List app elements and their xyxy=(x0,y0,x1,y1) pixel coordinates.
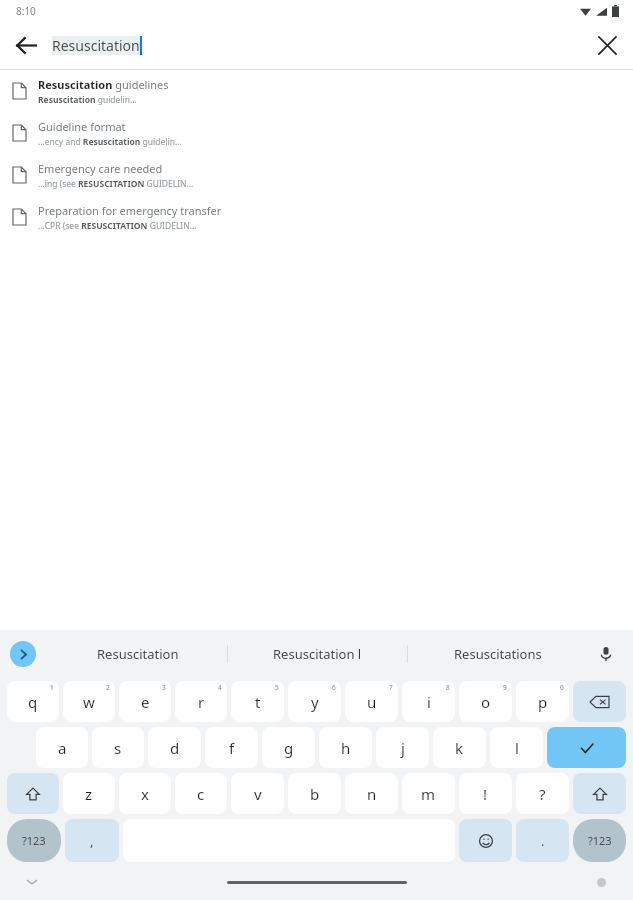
button[interactable]: 3 xyxy=(119,681,171,722)
staticText: 3 xyxy=(162,683,166,692)
button[interactable]: 6 xyxy=(288,681,341,722)
button[interactable]: 5 xyxy=(231,681,284,722)
staticText: c xyxy=(197,784,205,804)
staticText: d xyxy=(170,738,180,758)
staticText: Resuscitation guidelin… xyxy=(38,94,137,106)
staticText: 8:10 xyxy=(16,4,36,18)
staticText: , xyxy=(90,832,94,850)
button[interactable]: n xyxy=(345,773,398,814)
other: Search xyxy=(579,740,595,756)
button[interactable]: , xyxy=(65,819,119,862)
button[interactable]: Search xyxy=(547,727,626,768)
button[interactable]: Resuscitation xyxy=(48,630,227,678)
button[interactable]: Guideline format xyxy=(0,112,633,154)
staticText: 4 xyxy=(218,683,222,692)
button[interactable]: 4 xyxy=(175,681,227,722)
staticText: f xyxy=(229,738,235,758)
staticText: Resuscitations xyxy=(454,645,542,663)
button[interactable]: s xyxy=(92,727,144,768)
staticText: r xyxy=(198,692,205,712)
staticText: q xyxy=(28,692,38,712)
button[interactable]: Emoji xyxy=(459,819,512,862)
button[interactable]: Resuscitation l xyxy=(228,630,407,678)
staticText: 0 xyxy=(560,683,564,692)
button[interactable]: 7 xyxy=(345,681,398,722)
button[interactable]: 9 xyxy=(459,681,512,722)
staticText: 9 xyxy=(503,683,507,692)
staticText: v xyxy=(254,784,262,804)
button[interactable]: More suggestions xyxy=(10,641,36,667)
staticText: 8 xyxy=(446,683,450,692)
button[interactable]: ! xyxy=(459,773,512,814)
button[interactable]: ? xyxy=(516,773,569,814)
staticText: e xyxy=(141,692,150,712)
staticText: b xyxy=(310,784,320,804)
staticText: Resuscitation l xyxy=(273,645,362,663)
staticText: …ency and Resuscitation guidelin… xyxy=(38,136,182,148)
staticText: ?123 xyxy=(588,833,612,848)
button[interactable]: g xyxy=(262,727,315,768)
button[interactable]: d xyxy=(148,727,201,768)
button[interactable]: Shift xyxy=(573,773,626,814)
staticText: p xyxy=(538,692,548,712)
staticText: a xyxy=(58,738,67,758)
button[interactable]: a xyxy=(36,727,88,768)
staticText: Emergency care needed xyxy=(38,161,163,176)
button[interactable]: l xyxy=(490,727,543,768)
button[interactable]: m xyxy=(402,773,455,814)
button[interactable]: 1 xyxy=(7,681,59,722)
staticText: ? xyxy=(539,784,546,804)
staticText: 2 xyxy=(106,683,110,692)
staticText: ! xyxy=(483,784,488,804)
button[interactable]: Recents xyxy=(589,870,613,894)
button[interactable]: f xyxy=(205,727,258,768)
other: Shift xyxy=(26,787,40,801)
button[interactable]: Backspace xyxy=(573,681,626,722)
staticText: . xyxy=(541,832,545,850)
button[interactable]: Hide keyboard xyxy=(20,870,44,894)
button[interactable]: x xyxy=(119,773,171,814)
staticText: n xyxy=(367,784,377,804)
button[interactable]: Preparation for emergency transfer xyxy=(0,196,633,238)
staticText: Resuscitation guidelines xyxy=(38,77,169,92)
button[interactable]: 2 xyxy=(63,681,115,722)
staticText: u xyxy=(367,692,377,712)
button[interactable]: j xyxy=(376,727,429,768)
button[interactable]: Resuscitations xyxy=(408,630,587,678)
staticText: ?123 xyxy=(22,833,46,848)
button[interactable]: 8 xyxy=(402,681,455,722)
staticText: x xyxy=(141,784,149,804)
staticText: g xyxy=(284,738,294,758)
staticText: Resuscitation xyxy=(52,36,140,55)
staticText: 1 xyxy=(50,683,54,692)
button[interactable]: Shift xyxy=(7,773,59,814)
staticText: 5 xyxy=(275,683,279,692)
staticText: w xyxy=(83,692,95,712)
staticText: i xyxy=(427,692,431,712)
staticText: 6 xyxy=(332,683,336,692)
staticText: …ing (see RESUSCITATION GUIDELIN… xyxy=(38,178,194,190)
staticText: t xyxy=(255,692,261,712)
button[interactable]: Voice input xyxy=(591,639,621,669)
staticText: …CPR (see RESUSCITATION GUIDELIN… xyxy=(38,220,197,232)
button[interactable]: 0 xyxy=(516,681,569,722)
button[interactable]: v xyxy=(231,773,284,814)
button[interactable]: z xyxy=(63,773,115,814)
button[interactable]: c xyxy=(175,773,227,814)
staticText: z xyxy=(85,784,93,804)
button[interactable]: . xyxy=(516,819,569,862)
button[interactable]: k xyxy=(433,727,486,768)
button[interactable]: Emergency care needed xyxy=(0,154,633,196)
other: Emoji xyxy=(479,834,493,848)
button[interactable]: ?123 xyxy=(7,819,61,862)
button[interactable]: ?123 xyxy=(573,819,626,862)
button[interactable]: Resuscitation guidelines xyxy=(0,70,633,112)
staticText: o xyxy=(481,692,491,712)
staticText: 7 xyxy=(389,683,393,692)
button[interactable]: Back xyxy=(0,22,52,69)
button[interactable]: Clear xyxy=(581,22,633,69)
button[interactable]: h xyxy=(319,727,372,768)
button[interactable]: b xyxy=(288,773,341,814)
staticText: h xyxy=(341,738,351,758)
